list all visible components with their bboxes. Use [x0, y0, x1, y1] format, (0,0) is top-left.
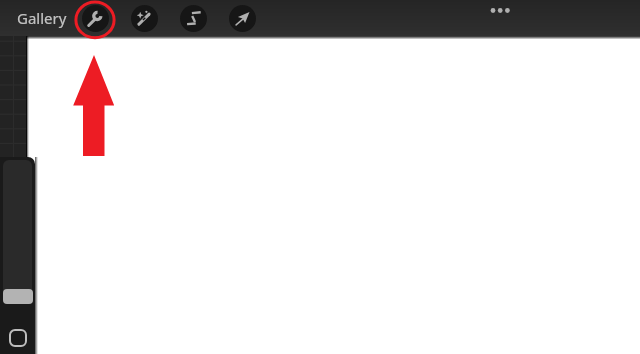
button[interactable]: Magic wand: [131, 5, 158, 32]
button[interactable]: Color: [9, 329, 27, 347]
staticText: Gallery: [17, 8, 67, 28]
button[interactable]: More options: [487, 3, 513, 18]
button[interactable]: Gallery: [17, 0, 67, 36]
button[interactable]: Brush size: [3, 289, 33, 304]
button[interactable]: Transform: [229, 5, 256, 32]
button[interactable]: Adjustments: [82, 5, 109, 32]
button[interactable]: Selection: [180, 5, 207, 32]
